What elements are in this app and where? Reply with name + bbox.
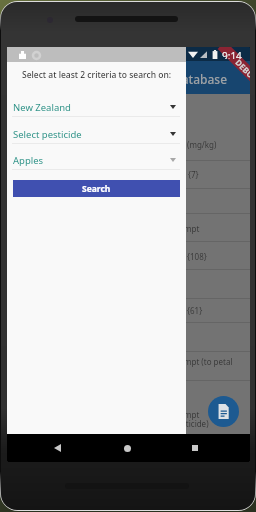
button[interactable]: Apples: [7, 153, 186, 175]
staticText: New Zealand: [13, 101, 71, 114]
button[interactable]: [7, 94, 250, 160]
staticText: Pesticide Residue Database: [70, 71, 228, 87]
staticText: {108}: [187, 251, 207, 262]
staticText: DEBUG: [233, 57, 250, 84]
button[interactable]: [7, 160, 250, 188]
staticText: cticide): [182, 418, 209, 429]
button[interactable]: [7, 213, 250, 241]
staticText: mpt: [184, 223, 200, 234]
button[interactable]: Home: [112, 434, 142, 462]
button[interactable]: Select pesticide: [7, 127, 186, 149]
staticText: (mg/kg): [187, 139, 217, 150]
button[interactable]: New Zealand: [7, 100, 186, 122]
button[interactable]: [7, 380, 250, 431]
staticText: Search: [82, 183, 111, 195]
staticText: Select at least 2 criteria to search on:: [7, 69, 186, 81]
staticText: Apples: [13, 154, 44, 167]
staticText: mpt (to petal: [184, 356, 233, 367]
button[interactable]: [7, 351, 250, 380]
staticText: 9:14: [222, 49, 242, 59]
staticText: {7}: [188, 169, 199, 180]
staticText: {61}: [187, 305, 203, 316]
button[interactable]: Back: [42, 434, 72, 462]
button[interactable]: [7, 269, 250, 298]
button[interactable]: New report: [208, 396, 239, 427]
button[interactable]: [7, 298, 250, 322]
button[interactable]: Recent apps: [180, 434, 210, 462]
staticText: mpt: [184, 409, 200, 420]
button[interactable]: [7, 241, 250, 269]
button[interactable]: Search: [13, 180, 180, 197]
staticText: Select pesticide: [13, 128, 82, 141]
button[interactable]: [7, 188, 250, 213]
button[interactable]: [7, 322, 250, 351]
